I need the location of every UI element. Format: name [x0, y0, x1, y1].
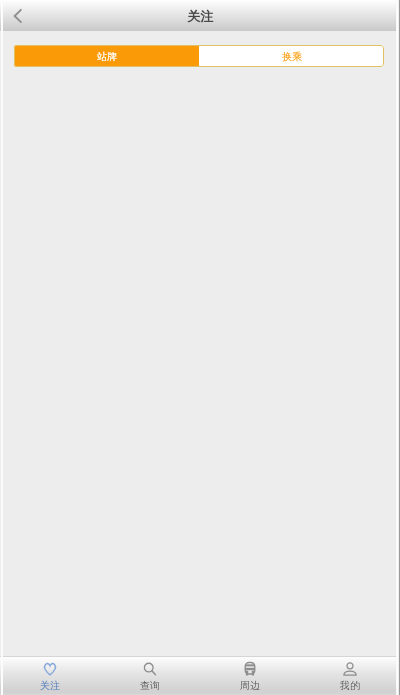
button[interactable]: 查询 — [100, 657, 200, 695]
button[interactable]: 我的 — [300, 657, 400, 695]
staticText: 周边 — [240, 679, 260, 692]
button[interactable]: 周边 — [200, 657, 300, 695]
button[interactable]: Back — [0, 0, 35, 31]
staticText: 我的 — [340, 679, 360, 692]
button[interactable]: 站牌 — [14, 45, 199, 67]
staticText: 关注 — [187, 8, 213, 24]
button[interactable]: 换乘 — [199, 45, 384, 67]
staticText: 关注 — [40, 679, 60, 692]
staticText: 换乘 — [282, 50, 302, 63]
button[interactable]: 关注 — [0, 657, 100, 695]
staticText: 查询 — [140, 679, 160, 692]
staticText: 站牌 — [97, 50, 117, 63]
